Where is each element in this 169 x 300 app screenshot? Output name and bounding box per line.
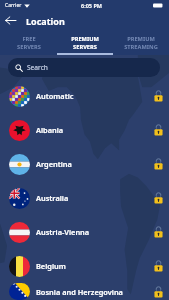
staticText: PREMIUM SERVERS [71, 35, 99, 50]
button[interactable]: Back [2, 12, 19, 29]
button[interactable]: Premium locked [150, 88, 166, 104]
button[interactable]: Albania [0, 113, 169, 147]
staticText: Automatic [36, 91, 74, 101]
button[interactable]: Premium locked [150, 156, 166, 172]
button[interactable]: Premium locked [150, 258, 166, 274]
button[interactable]: Search [8, 58, 160, 77]
button[interactable]: Premium locked [150, 122, 166, 138]
button[interactable]: Premium locked [150, 190, 166, 206]
button[interactable]: PREMIUM STREAMING [113, 30, 169, 55]
button[interactable]: Bosnia and Herzegovina [0, 283, 169, 300]
button[interactable]: Australia [0, 181, 169, 215]
staticText: Carrier [5, 2, 22, 9]
button[interactable]: PREMIUM SERVERS [57, 30, 113, 55]
staticText: FREE SERVERS [17, 35, 41, 50]
staticText: Argentina [36, 159, 72, 169]
staticText: 6:05 PM [81, 2, 102, 9]
staticText: Location [26, 15, 65, 27]
staticText: Austria-Vienna [36, 227, 90, 237]
button[interactable]: Premium locked [150, 284, 166, 300]
button[interactable]: Premium locked [150, 224, 166, 240]
button[interactable]: Belgium [0, 249, 169, 283]
button[interactable]: Automatic [0, 79, 169, 113]
staticText: Belgium [36, 261, 66, 271]
button[interactable]: Argentina [0, 147, 169, 181]
staticText: Australia [36, 193, 69, 203]
staticText: Search [27, 63, 48, 72]
button[interactable]: FREE SERVERS [0, 30, 57, 55]
staticText: PREMIUM STREAMING [124, 35, 158, 50]
staticText: Bosnia and Herzegovina [36, 287, 123, 297]
button[interactable]: Austria-Vienna [0, 215, 169, 249]
staticText: Albania [36, 125, 64, 135]
